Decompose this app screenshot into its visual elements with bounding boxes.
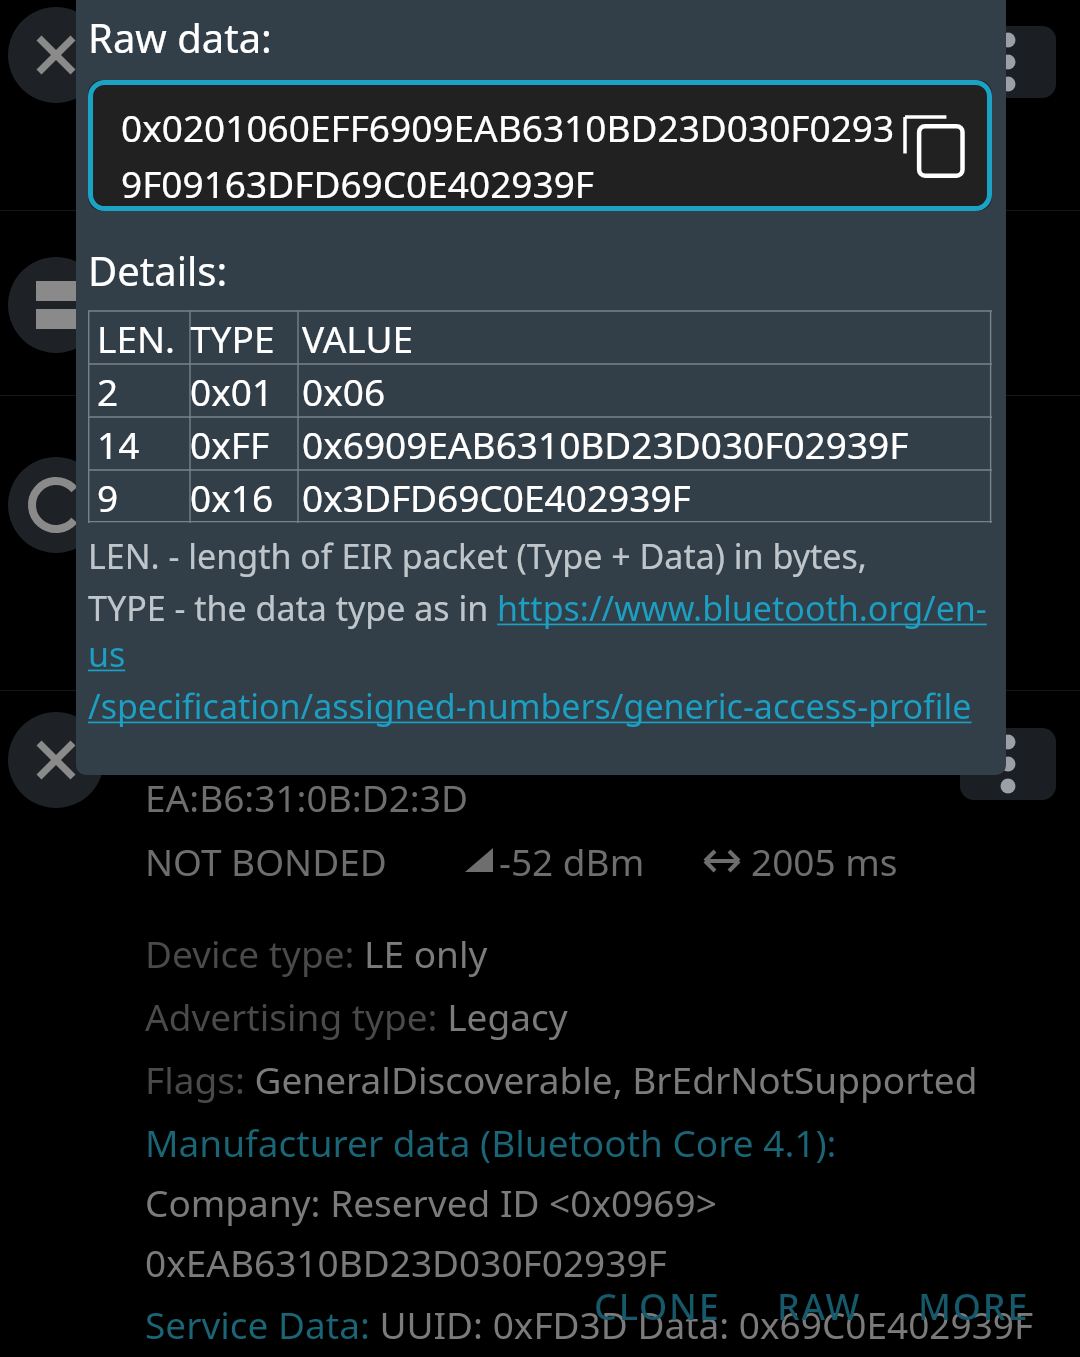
staticText: 2005 ms [751,836,898,886]
staticText: Raw data: [88,10,272,64]
button[interactable]: Copy raw data [890,102,978,190]
button[interactable]: More options [960,728,1056,800]
staticText: Company: Reserved ID <0x0969> [145,1177,717,1227]
staticText: NOT BONDED [145,836,387,886]
button[interactable]: Device icon [8,257,104,353]
staticText: 0x06 [302,366,386,416]
button[interactable]: Device icon [8,457,104,553]
staticText: LEN. - length of EIR packet (Type + Data… [88,533,867,579]
staticText: LEN. [97,313,175,363]
staticText: 0xFF [190,419,270,469]
button[interactable]: MORE [890,1272,1058,1341]
staticText: Device type: LE only [145,928,488,978]
staticText: 0x01 [190,366,274,416]
staticText: EA:B6:31:0B:D2:3D [145,772,468,822]
staticText: Details: [88,243,228,297]
button[interactable]: More options [960,26,1056,98]
staticText: 14 [97,419,140,469]
staticText: VALUE [302,313,413,363]
staticText: /specification/assigned-numbers/generic-… [88,683,972,729]
staticText: 0x3DFD69C0E402939F [302,472,691,522]
staticText: 0x6909EAB6310BD23D030F02939F [302,419,909,469]
staticText: 9 [97,472,119,522]
staticText: 2 [97,366,119,416]
button[interactable]: RAW [749,1272,890,1341]
button[interactable]: Device icon [8,712,104,808]
staticText: 0x16 [190,472,274,522]
staticText: TYPE [190,313,275,363]
staticText: 0xEAB6310BD23D030F02939F [145,1237,667,1287]
staticText: CLONE [594,1282,721,1331]
staticText: TYPE - the data type as in https://www.b… [88,585,992,677]
staticText: MORE [918,1282,1030,1331]
staticText: Advertising type: Legacy [145,991,568,1041]
staticText: 0x0201060EFF6909EAB6310BD23D030F0293 [121,102,895,152]
button[interactable]: CLONE [566,1272,749,1341]
staticText: -52 dBm [499,836,645,886]
staticText: Flags: GeneralDiscoverable, BrEdrNotSupp… [145,1054,978,1104]
staticText: 9F09163DFD69C0E402939F [121,158,595,208]
staticText: Manufacturer data (Bluetooth Core 4.1): [145,1117,837,1167]
button[interactable]: /specification/assigned-numbers/generic-… [88,683,972,729]
button[interactable]: Device icon [8,7,104,103]
staticText: RAW [777,1282,862,1331]
staticText: Service Data: UUID: 0xFD3D Data: 0x69C0E… [145,1299,1034,1349]
